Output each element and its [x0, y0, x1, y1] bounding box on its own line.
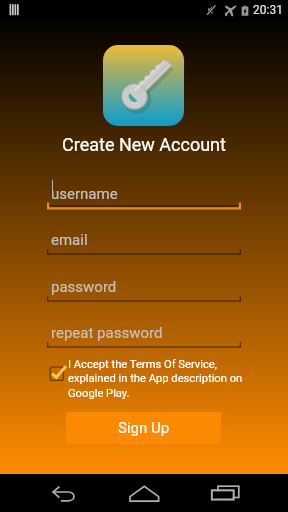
staticText: username	[51, 185, 118, 203]
button[interactable]: repeat password	[47, 317, 241, 353]
button[interactable]: App icon	[103, 45, 184, 126]
staticText: email	[51, 231, 88, 249]
button[interactable]: I Accept the Terms Of Service, explained…	[49, 358, 245, 400]
button[interactable]: Back	[38, 474, 90, 512]
button[interactable]: username	[47, 178, 241, 214]
staticText: Create New Account	[0, 134, 288, 155]
button[interactable]: email	[47, 224, 241, 260]
button[interactable]: Recent apps	[199, 474, 251, 512]
staticText: I Accept the Terms Of Service, explained…	[68, 358, 245, 400]
staticText: password	[51, 278, 117, 296]
button[interactable]: password	[47, 271, 241, 307]
button[interactable]: Home	[118, 474, 170, 512]
staticText: repeat password	[51, 324, 163, 342]
staticText: 20:31	[253, 3, 283, 17]
button[interactable]: Sign Up	[66, 412, 221, 444]
staticText: Sign Up	[118, 419, 170, 437]
